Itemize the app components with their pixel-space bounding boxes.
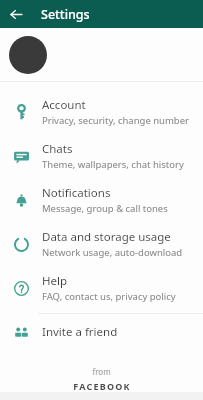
- staticText: Invite a friend: [42, 324, 118, 340]
- staticText: Settings: [41, 6, 90, 23]
- button[interactable]: Chats: [0, 134, 203, 178]
- staticText: Network usage, auto-download: [42, 246, 183, 259]
- button[interactable]: [0, 28, 203, 81]
- button[interactable]: Help: [0, 266, 203, 310]
- button[interactable]: Notifications: [0, 178, 203, 222]
- button[interactable]: Invite a friend: [0, 314, 203, 350]
- staticText: from: [92, 366, 111, 377]
- button[interactable]: Account: [0, 90, 203, 134]
- staticText: FACEBOOK: [73, 380, 131, 392]
- staticText: Message, group & call tones: [42, 202, 168, 215]
- staticText: Data and storage usage: [42, 229, 171, 245]
- staticText: Chats: [42, 141, 73, 157]
- staticText: Theme, wallpapers, chat history: [42, 158, 184, 171]
- button[interactable]: Back: [5, 3, 27, 25]
- button[interactable]: Data and storage usage: [0, 222, 203, 266]
- staticText: Privacy, security, change number: [42, 114, 189, 127]
- staticText: Notifications: [42, 185, 111, 201]
- staticText: FAQ, contact us, privacy policy: [42, 290, 176, 303]
- staticText: Account: [42, 97, 86, 113]
- staticText: Help: [42, 273, 68, 289]
